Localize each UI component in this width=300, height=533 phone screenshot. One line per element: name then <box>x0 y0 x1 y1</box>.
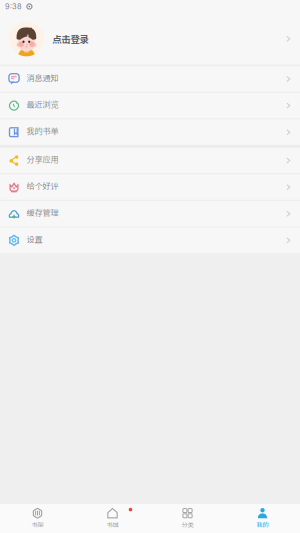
staticText: 缓存管理 <box>26 206 58 218</box>
button[interactable]: 点击登录 <box>0 13 300 65</box>
button[interactable]: 书城 <box>75 504 150 533</box>
staticText: 设置 <box>26 233 42 245</box>
staticText: 给个好评 <box>26 180 58 191</box>
staticText: 分享应用 <box>26 153 58 165</box>
button[interactable]: 我的书单 <box>0 119 300 145</box>
staticText: 点击登录 <box>52 32 88 46</box>
staticText: 书城 <box>106 520 118 529</box>
staticText: 最近浏览 <box>26 98 58 110</box>
button[interactable]: 书架 <box>0 504 75 533</box>
staticText: 我的 <box>256 520 268 529</box>
button[interactable]: 消息通知 <box>0 66 300 92</box>
button[interactable]: 缓存管理 <box>0 201 300 226</box>
staticText: 分类 <box>181 520 193 529</box>
staticText: 消息通知 <box>26 71 58 83</box>
button[interactable]: 我的 <box>225 504 300 533</box>
staticText: 书架 <box>31 520 43 529</box>
button[interactable]: 给个好评 <box>0 174 300 200</box>
button[interactable]: 最近浏览 <box>0 93 300 118</box>
button[interactable]: 分类 <box>150 504 225 533</box>
staticText: 9:38 <box>5 2 22 11</box>
button[interactable]: 分享应用 <box>0 148 300 173</box>
button[interactable]: 设置 <box>0 228 300 253</box>
staticText: 我的书单 <box>26 125 58 136</box>
